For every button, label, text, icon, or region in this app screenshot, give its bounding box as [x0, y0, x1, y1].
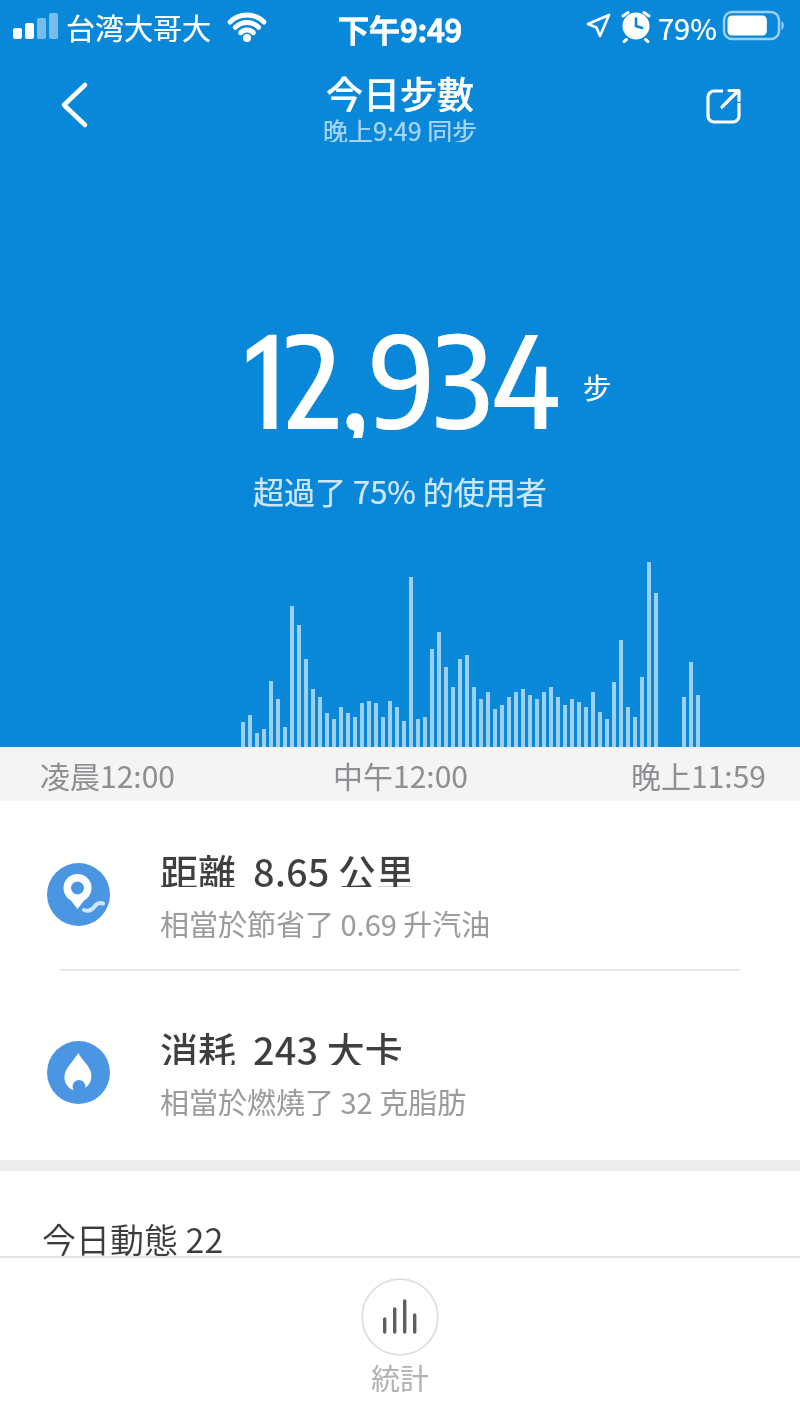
staticText: 台湾大哥大 [66, 6, 212, 46]
staticText: 凌晨12:00 [40, 753, 175, 796]
staticText: 超過了 75% 的使用者 [253, 468, 547, 508]
button[interactable]: 距離 8.65 公里 [0, 810, 800, 970]
button[interactable] [40, 70, 110, 140]
staticText: 今日動態 22 [42, 1214, 224, 1258]
staticText: 相當於節省了 0.69 升汽油 [160, 902, 491, 938]
button[interactable]: 消耗 243 大卡 [0, 988, 800, 1148]
staticText: 步 [583, 367, 612, 408]
button[interactable] [361, 1278, 439, 1356]
staticText: 統計 [371, 1356, 430, 1392]
staticText: 下午9:49 [338, 6, 463, 46]
staticText: 中午12:00 [333, 753, 468, 796]
button[interactable] [693, 74, 757, 136]
staticText: 晚上11:59 [631, 753, 766, 796]
staticText: 相當於燃燒了 32 克脂肪 [160, 1080, 467, 1116]
staticText: 12,934 [246, 298, 561, 438]
staticText: 今日步數 [326, 66, 474, 112]
staticText: 消耗 243 大卡 [160, 1021, 403, 1065]
staticText: 晚上9:49 同步 [323, 112, 478, 142]
staticText: 79% [658, 6, 717, 46]
staticText: 距離 8.65 公里 [160, 843, 414, 887]
